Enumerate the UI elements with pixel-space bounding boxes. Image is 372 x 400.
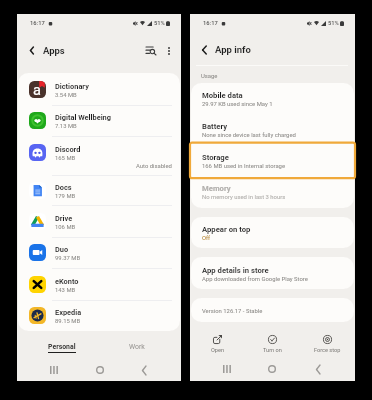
button[interactable]: Turn on: [245, 335, 300, 354]
staticText: 51%: [154, 20, 165, 27]
staticText: Digital Wellbeing: [55, 113, 111, 122]
button[interactable]: Storage: [191, 145, 354, 176]
staticText: Personal: [48, 343, 76, 351]
staticText: eKonto: [55, 277, 79, 286]
button[interactable]: Navigate up: [199, 44, 210, 55]
button[interactable]: Work: [99, 332, 174, 363]
button[interactable]: Discord: [18, 136, 180, 175]
staticText: Apps: [43, 45, 65, 56]
staticText: Work: [129, 343, 145, 351]
button[interactable]: Personal: [24, 332, 99, 363]
staticText: Force stop: [314, 347, 341, 354]
staticText: a: [33, 82, 41, 98]
staticText: App downloaded from Google Play Store: [202, 276, 308, 283]
button[interactable]: More options: [162, 44, 175, 57]
button[interactable]: Recent apps: [31, 360, 77, 380]
button[interactable]: a: [18, 73, 180, 105]
button[interactable]: Navigate up: [26, 45, 37, 56]
button[interactable]: Expedia: [18, 300, 180, 331]
staticText: Usage: [201, 73, 218, 80]
button[interactable]: Back: [122, 360, 167, 380]
staticText: 51%: [328, 20, 339, 27]
staticText: Drive: [55, 214, 73, 223]
staticText: Storage: [202, 153, 229, 162]
staticText: Turn on: [263, 347, 282, 354]
staticText: Discord: [55, 145, 81, 154]
button[interactable]: Recent apps: [204, 359, 249, 379]
button[interactable]: Duo: [18, 237, 180, 268]
button[interactable]: Appear on top: [191, 217, 354, 248]
button[interactable]: App details in store: [191, 257, 354, 289]
staticText: No memory used in last 3 hours: [202, 194, 286, 201]
button[interactable]: Home: [249, 359, 295, 379]
staticText: 99.37 MB: [55, 255, 81, 262]
button[interactable]: Battery: [191, 114, 354, 145]
button[interactable]: Docs: [18, 175, 180, 205]
staticText: Auto disabled: [136, 163, 172, 170]
staticText: 16:17: [30, 20, 45, 27]
staticText: 7.13 MB: [55, 123, 77, 130]
staticText: 165 MB: [55, 155, 76, 162]
button[interactable]: eKonto: [18, 268, 180, 300]
staticText: Docs: [55, 183, 72, 192]
staticText: Expedia: [55, 308, 82, 317]
button[interactable]: Home: [77, 360, 122, 380]
staticText: 143 MB: [55, 287, 76, 294]
staticText: Off: [202, 235, 211, 242]
staticText: 179 MB: [55, 193, 76, 200]
button[interactable]: Back: [295, 359, 341, 379]
button[interactable]: Open: [190, 335, 245, 354]
staticText: 106 MB: [55, 224, 76, 231]
button[interactable]: Force stop: [300, 335, 355, 354]
staticText: Dictionary: [55, 82, 89, 91]
staticText: Battery: [202, 122, 228, 131]
staticText: 16:17: [203, 20, 218, 27]
staticText: 89.15 MB: [55, 318, 81, 325]
staticText: App info: [215, 44, 251, 55]
staticText: Memory: [202, 184, 231, 193]
button[interactable]: Digital Wellbeing: [18, 105, 180, 136]
staticText: None since device last fully charged: [202, 132, 296, 139]
staticText: Version 126.17 - Stable: [202, 308, 263, 315]
staticText: 166 MB used in Internal storage: [202, 163, 286, 170]
button[interactable]: Memory: [191, 176, 354, 207]
staticText: 29.97 KB used since May 1: [202, 101, 273, 108]
staticText: Open: [211, 347, 225, 354]
button[interactable]: Search: [144, 44, 157, 57]
staticText: Duo: [55, 245, 69, 254]
button[interactable]: Drive: [18, 205, 180, 237]
staticText: Mobile data: [202, 91, 243, 100]
staticText: Appear on top: [202, 225, 251, 234]
staticText: 3.54 MB: [55, 92, 77, 99]
staticText: App details in store: [202, 266, 269, 275]
button[interactable]: Mobile data: [191, 83, 354, 114]
